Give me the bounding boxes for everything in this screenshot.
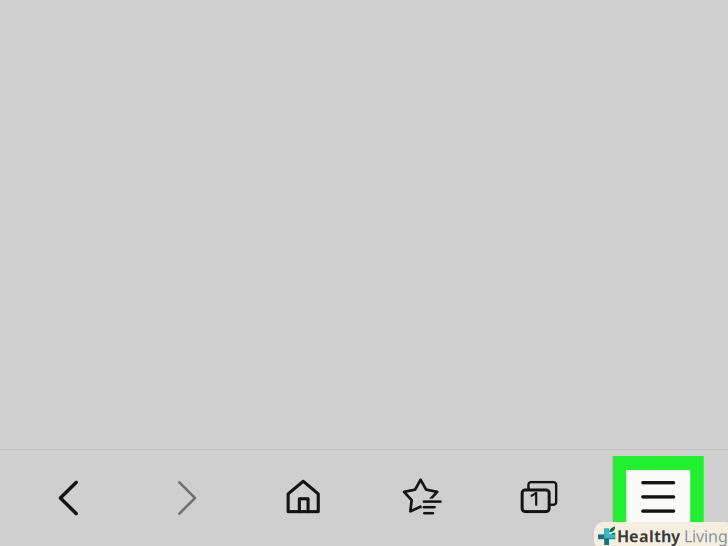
button[interactable]: Home <box>249 450 357 546</box>
staticText: Living <box>680 525 728 546</box>
button[interactable]: Tabs <box>485 450 593 546</box>
button[interactable]: Bookmarks <box>369 450 477 546</box>
staticText: Healthy <box>617 525 680 546</box>
button[interactable]: Back <box>14 450 122 546</box>
button[interactable]: Menu <box>613 456 704 546</box>
button[interactable]: Forward <box>133 450 241 546</box>
